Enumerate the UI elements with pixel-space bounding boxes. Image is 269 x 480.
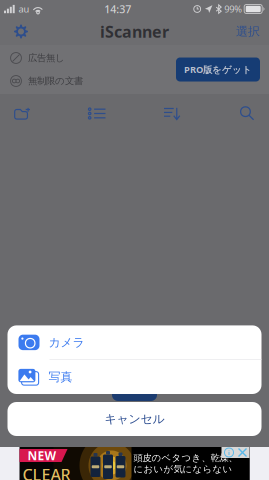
staticText: 頭皮のベタつき、乾燥、 [133, 452, 237, 463]
button[interactable]: Settings [0, 18, 42, 45]
button[interactable]: カメラ [7, 325, 261, 359]
staticText: 99% [224, 3, 242, 15]
staticText: 広告無し [28, 52, 65, 64]
staticText: 無制限の文書 [28, 75, 83, 87]
staticText: キャンセル [104, 412, 164, 426]
button[interactable]: New folder [0, 94, 44, 133]
button[interactable]: List view [75, 94, 119, 133]
staticText: iScanner [100, 21, 169, 42]
staticText: においが気にならない [133, 463, 232, 475]
staticText: 選択 [236, 24, 260, 39]
staticText: au [18, 3, 29, 15]
staticText: カメラ [48, 335, 84, 350]
button[interactable]: Sort [150, 94, 194, 133]
button[interactable]: PRO版をゲット [176, 57, 260, 81]
button[interactable]: Search [225, 94, 269, 133]
button[interactable]: 選択 [227, 18, 269, 45]
button[interactable]: キャンセル [7, 402, 261, 436]
staticText: NEW [27, 447, 56, 463]
button[interactable]: 写真 [7, 360, 261, 394]
staticText: 写真 [48, 370, 72, 384]
staticText: 14:37 [104, 2, 131, 16]
staticText: CLEAR [22, 464, 70, 480]
staticText: PRO版をゲット [184, 63, 252, 76]
